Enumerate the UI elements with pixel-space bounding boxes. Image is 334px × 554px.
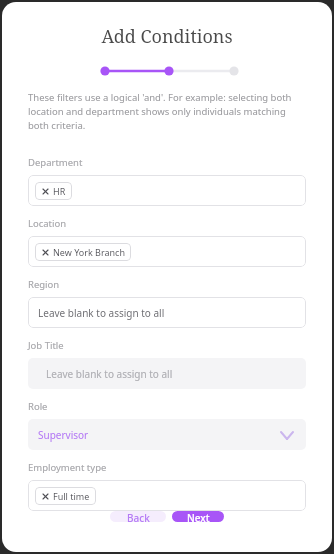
staticText: Location bbox=[28, 217, 67, 230]
staticText: Leave blank to assign to all bbox=[46, 367, 173, 381]
staticText: Next bbox=[187, 511, 210, 522]
staticText: Department bbox=[28, 156, 83, 169]
staticText: Role bbox=[28, 400, 48, 413]
button[interactable]: Remove New York Branch bbox=[41, 248, 49, 256]
button[interactable]: Remove New York Branch bbox=[35, 243, 131, 261]
button[interactable]: Back bbox=[110, 511, 166, 522]
button[interactable]: Remove HR bbox=[41, 187, 49, 195]
button[interactable]: Remove Full time bbox=[28, 480, 306, 511]
staticText: Region bbox=[28, 278, 60, 291]
button[interactable]: Remove Full time bbox=[35, 487, 96, 505]
staticText: Employment type bbox=[28, 461, 107, 474]
staticText: New York Branch bbox=[53, 246, 125, 258]
other: Open role dropdown bbox=[280, 428, 294, 442]
button[interactable]: Next bbox=[172, 511, 224, 522]
button[interactable]: Remove HR bbox=[28, 175, 306, 206]
button[interactable]: Remove Full time bbox=[41, 492, 49, 500]
button[interactable]: Remove HR bbox=[35, 182, 72, 200]
staticText: Add Conditions bbox=[2, 24, 332, 49]
staticText: Leave blank to assign to all bbox=[38, 306, 165, 320]
button[interactable]: Remove New York Branch bbox=[28, 236, 306, 267]
staticText: Back bbox=[127, 511, 150, 522]
staticText: Full time bbox=[53, 490, 90, 502]
button[interactable]: Supervisor bbox=[28, 419, 306, 450]
staticText: HR bbox=[53, 185, 66, 197]
button[interactable]: Leave blank to assign to all bbox=[28, 297, 306, 328]
staticText: Job Title bbox=[28, 339, 64, 352]
staticText: Supervisor bbox=[38, 428, 89, 442]
staticText: These filters use a logical 'and'. For e… bbox=[28, 91, 306, 132]
